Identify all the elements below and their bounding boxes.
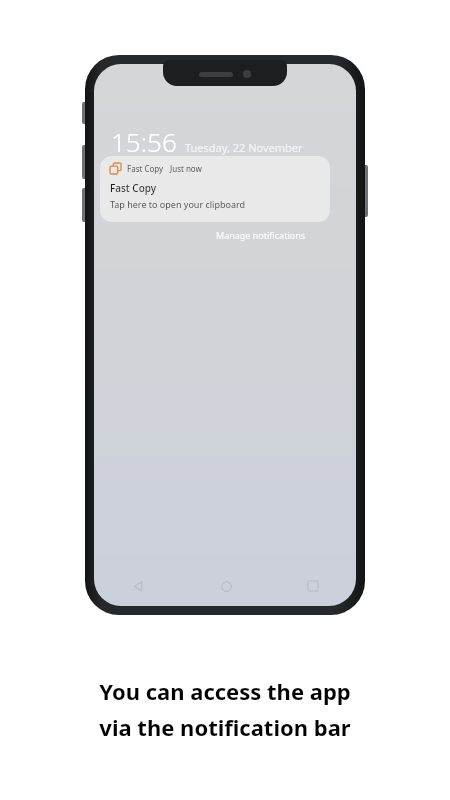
staticText: Fast Copy [127,163,164,174]
button[interactable]: Home [211,571,241,601]
button[interactable]: Fast Copy [100,156,330,222]
staticText: Manage notifications [216,229,306,241]
staticText: Tap here to open your clipboard [110,198,246,210]
staticText: Fast Copy [110,181,157,195]
staticText: Just now [170,163,202,174]
staticText: via the notification bar [99,712,351,742]
button[interactable]: Recent apps [298,571,328,601]
staticText: 15:56 [111,124,177,159]
button[interactable]: Back [123,571,153,601]
staticText: Tuesday, 22 November [185,140,303,155]
staticText: You can access the app [99,676,351,706]
button[interactable]: Manage notifications [212,227,310,243]
